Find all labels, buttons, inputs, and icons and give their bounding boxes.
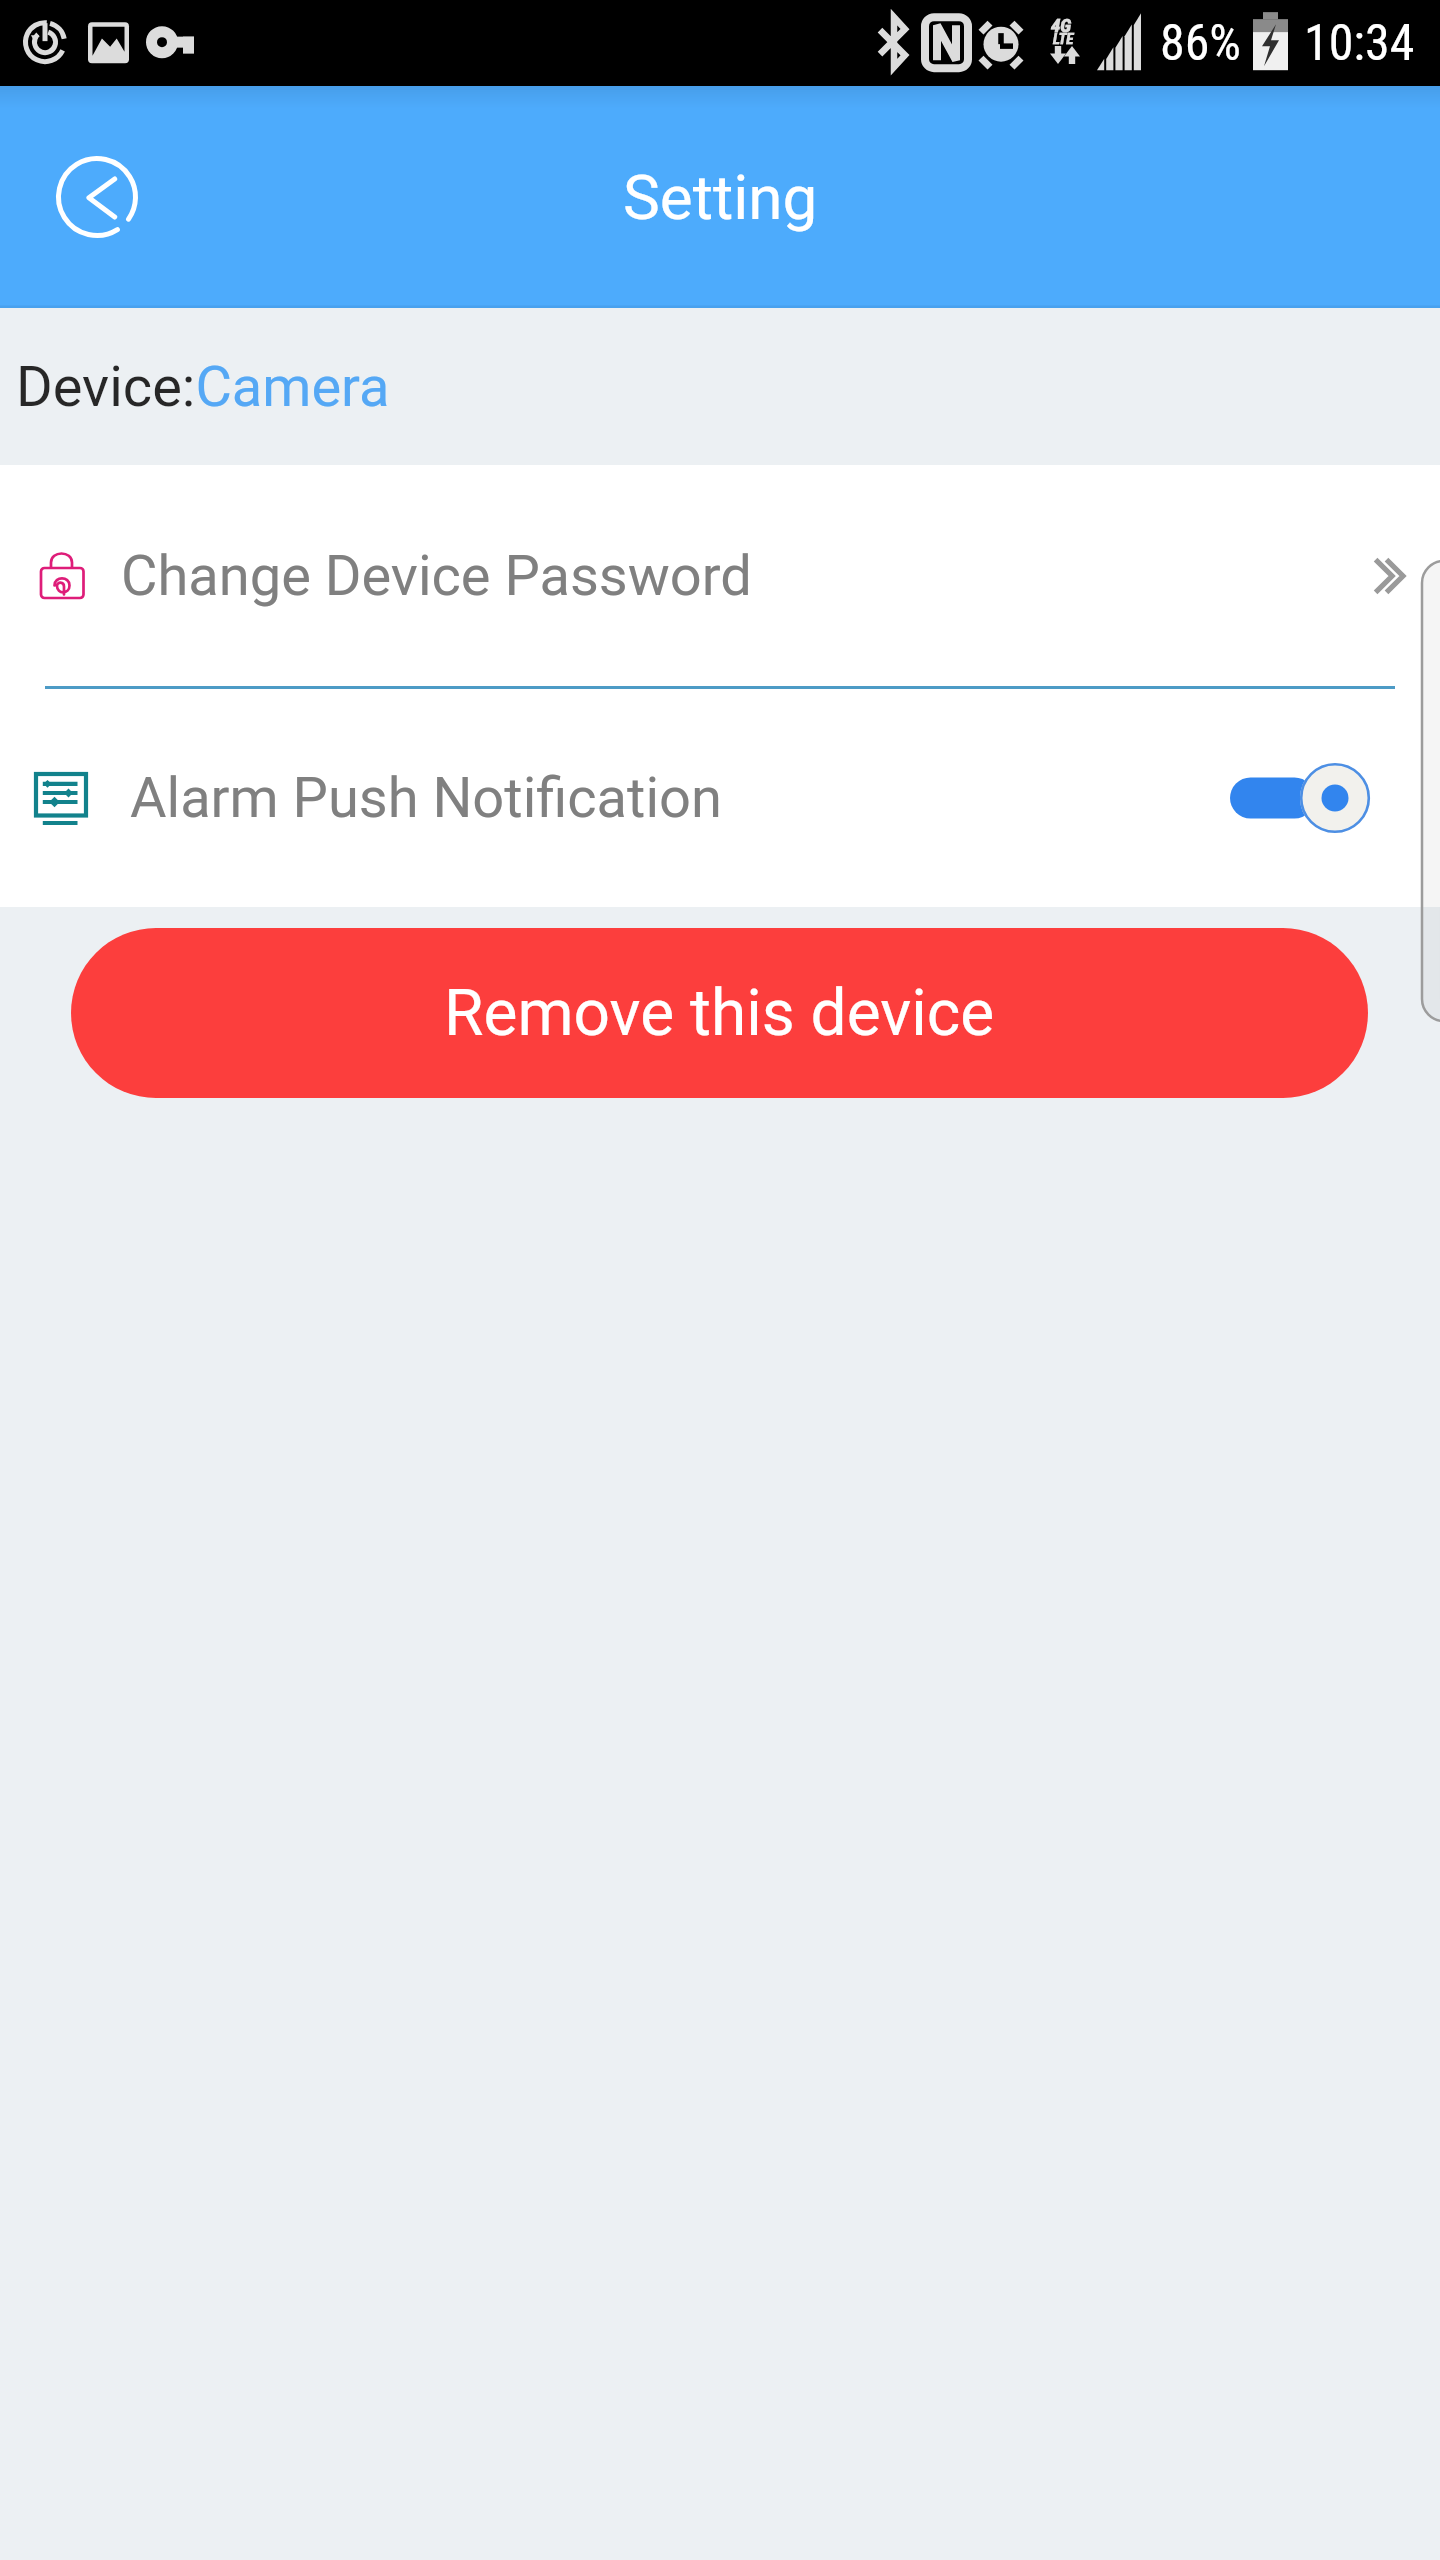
button[interactable]: Alarm Push Notification toggle (1230, 762, 1370, 834)
button[interactable]: Alarm Push Notification (0, 689, 1440, 907)
staticText: 86% (1160, 14, 1242, 73)
button[interactable]: Back (42, 142, 152, 252)
staticText: 10:34 (1304, 14, 1415, 73)
button[interactable]: Remove this device (71, 928, 1368, 1098)
staticText: LTE (1053, 30, 1074, 48)
staticText: Change Device Password (121, 543, 752, 609)
staticText: 4G (1051, 14, 1072, 36)
staticText: Setting (623, 161, 818, 234)
staticText: Device:Camera (16, 354, 390, 420)
staticText: Alarm Push Notification (130, 765, 722, 831)
button[interactable]: Change Device Password (0, 465, 1440, 686)
staticText: Remove this device (444, 976, 995, 1051)
